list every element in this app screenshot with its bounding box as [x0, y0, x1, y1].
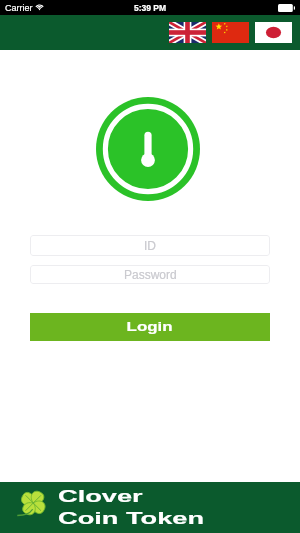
staticText: 5:39 PM [134, 3, 167, 12]
staticText: Carrier [5, 3, 33, 13]
staticText: Coin Token [58, 509, 205, 528]
button[interactable]: Login [30, 313, 270, 341]
button[interactable]: Japanese [255, 22, 292, 43]
button[interactable]: Chinese [212, 22, 249, 43]
button[interactable]: ID [30, 235, 270, 256]
button[interactable]: Password [30, 265, 270, 284]
staticText: Password [124, 268, 177, 281]
staticText: ID [144, 239, 156, 252]
button[interactable]: English [169, 22, 206, 43]
staticText: Login [127, 319, 173, 334]
staticText: Clover [58, 487, 143, 506]
